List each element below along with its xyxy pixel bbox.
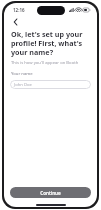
staticText: Your name xyxy=(11,71,33,77)
button[interactable]: Back xyxy=(10,17,20,27)
button[interactable]: John Doe xyxy=(10,80,91,89)
staticText: John Doe xyxy=(14,82,32,88)
staticText: Ok, let's set up your profile! First, wh… xyxy=(11,29,91,57)
staticText: 12:16 xyxy=(13,7,25,13)
staticText: Continue xyxy=(40,190,61,196)
button[interactable]: Continue xyxy=(10,187,91,198)
staticText: This is how you'll appear on Booth xyxy=(11,60,91,66)
